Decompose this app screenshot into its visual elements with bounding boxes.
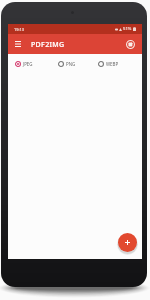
staticText: WEBP [106,61,119,67]
button[interactable]: JPEG [15,61,33,67]
button[interactable]: WEBP [98,61,119,67]
staticText: PDF2IMG [31,40,65,50]
staticText: PNG [66,61,76,67]
staticText: 51% [123,26,132,32]
button[interactable]: Convert [126,40,135,49]
button[interactable]: Menu [12,38,24,50]
button[interactable]: PNG [58,61,76,67]
staticText: 19:13 [14,27,24,32]
staticText: JPEG [23,61,33,67]
button[interactable]: Add [118,233,137,252]
